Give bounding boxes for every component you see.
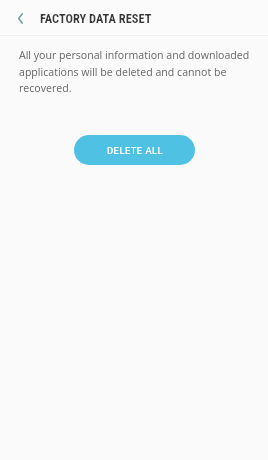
button[interactable]: Navigate up [8, 5, 33, 31]
staticText: DELETE ALL [107, 145, 163, 156]
staticText: FACTORY DATA RESET [40, 11, 152, 26]
staticText: All your personal information and downlo… [19, 48, 254, 95]
button[interactable]: DELETE ALL [74, 135, 195, 165]
